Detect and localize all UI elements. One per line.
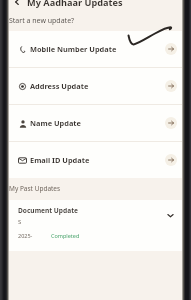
staticText: Name Update (30, 118, 81, 128)
staticText: Email ID Update (30, 155, 90, 165)
staticText: Start a new update? (9, 16, 75, 26)
button[interactable]: Document Update (9, 200, 182, 251)
staticText: S (18, 218, 22, 226)
button[interactable]: Name Update (9, 105, 182, 141)
button[interactable]: Mobile Number Update (9, 31, 182, 67)
other: Expand (164, 209, 176, 221)
button[interactable]: Back (9, 0, 25, 9)
button[interactable]: Open Name Update (165, 117, 177, 129)
button[interactable]: Open Email ID Update (165, 154, 177, 166)
staticText: 2025- (18, 232, 33, 239)
button[interactable]: Open Mobile Number Update (165, 43, 177, 55)
staticText: Completed (51, 232, 80, 239)
staticText: Document Update (18, 206, 78, 215)
button[interactable]: Open Address Update (165, 80, 177, 92)
staticText: My Aadhaar Updates (27, 0, 123, 9)
staticText: Mobile Number Update (30, 44, 117, 54)
staticText: My Past Updates (9, 184, 61, 193)
staticText: Address Update (30, 81, 89, 91)
button[interactable]: Address Update (9, 68, 182, 104)
button[interactable]: Email ID Update (9, 142, 182, 178)
